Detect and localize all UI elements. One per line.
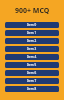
button[interactable]: Item 5 [5, 62, 59, 68]
staticText: Item 5 [27, 63, 37, 67]
button[interactable]: Item 6 [5, 70, 59, 76]
staticText: Item 7 [27, 79, 37, 83]
staticText: Item 2 [27, 39, 37, 43]
staticText: Item 8 [27, 87, 37, 91]
button[interactable]: Item 0 [5, 22, 59, 28]
button[interactable]: Item 3 [5, 46, 59, 52]
staticText: Item 3 [27, 47, 37, 51]
staticText: 900+ MCQ [15, 6, 50, 16]
staticText: Item 4 [27, 55, 37, 59]
staticText: Item 6 [27, 71, 37, 75]
button[interactable]: Item 2 [5, 38, 59, 44]
button[interactable]: Item 7 [5, 78, 59, 84]
staticText: Item 0 [27, 23, 37, 27]
button[interactable]: Item 4 [5, 54, 59, 60]
button[interactable]: Item 1 [5, 30, 59, 36]
button[interactable]: Item 8 [5, 86, 59, 92]
staticText: Item 1 [27, 31, 37, 35]
